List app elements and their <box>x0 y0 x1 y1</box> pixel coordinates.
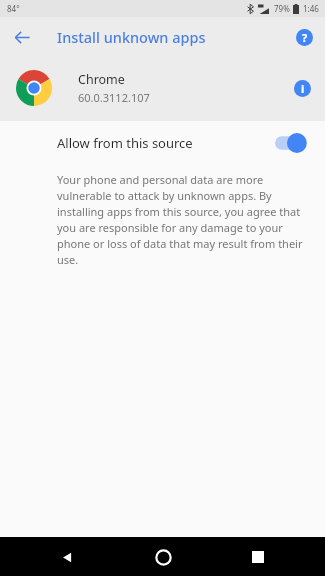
button[interactable]: Back <box>8 23 36 51</box>
button[interactable]: Chrome <box>0 57 325 119</box>
button[interactable]: App info <box>291 77 313 99</box>
staticText: Install unknown apps <box>57 27 206 47</box>
staticText: Chrome <box>78 71 125 88</box>
button[interactable]: Allow from this source <box>0 121 325 164</box>
staticText: 1:46 <box>303 3 319 14</box>
button[interactable]: Back <box>52 542 82 572</box>
button[interactable]: Recent apps <box>243 542 273 572</box>
staticText: i <box>301 81 305 96</box>
staticText: Your phone and personal data are more vu… <box>57 172 307 267</box>
staticText: Allow from this source <box>57 134 275 152</box>
staticText: 84° <box>7 3 20 14</box>
staticText: 79% <box>274 3 290 14</box>
button[interactable]: Help <box>292 25 316 49</box>
button[interactable]: Home <box>147 541 179 573</box>
staticText: ? <box>302 30 308 45</box>
staticText: 60.0.3112.107 <box>78 90 150 105</box>
button[interactable]: Allow from this source toggle <box>275 132 311 154</box>
